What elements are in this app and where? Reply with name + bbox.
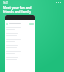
staticText: friends and family: [3, 10, 31, 14]
button[interactable]: [6, 45, 34, 51]
button[interactable]: [6, 51, 34, 57]
button[interactable]: [6, 33, 34, 39]
staticText: 9:41: [3, 1, 9, 5]
button[interactable]: [6, 39, 34, 45]
button[interactable]: [6, 27, 34, 33]
button[interactable]: [6, 22, 34, 25]
button[interactable]: [6, 57, 34, 63]
staticText: Meet your fun and: [3, 6, 32, 10]
